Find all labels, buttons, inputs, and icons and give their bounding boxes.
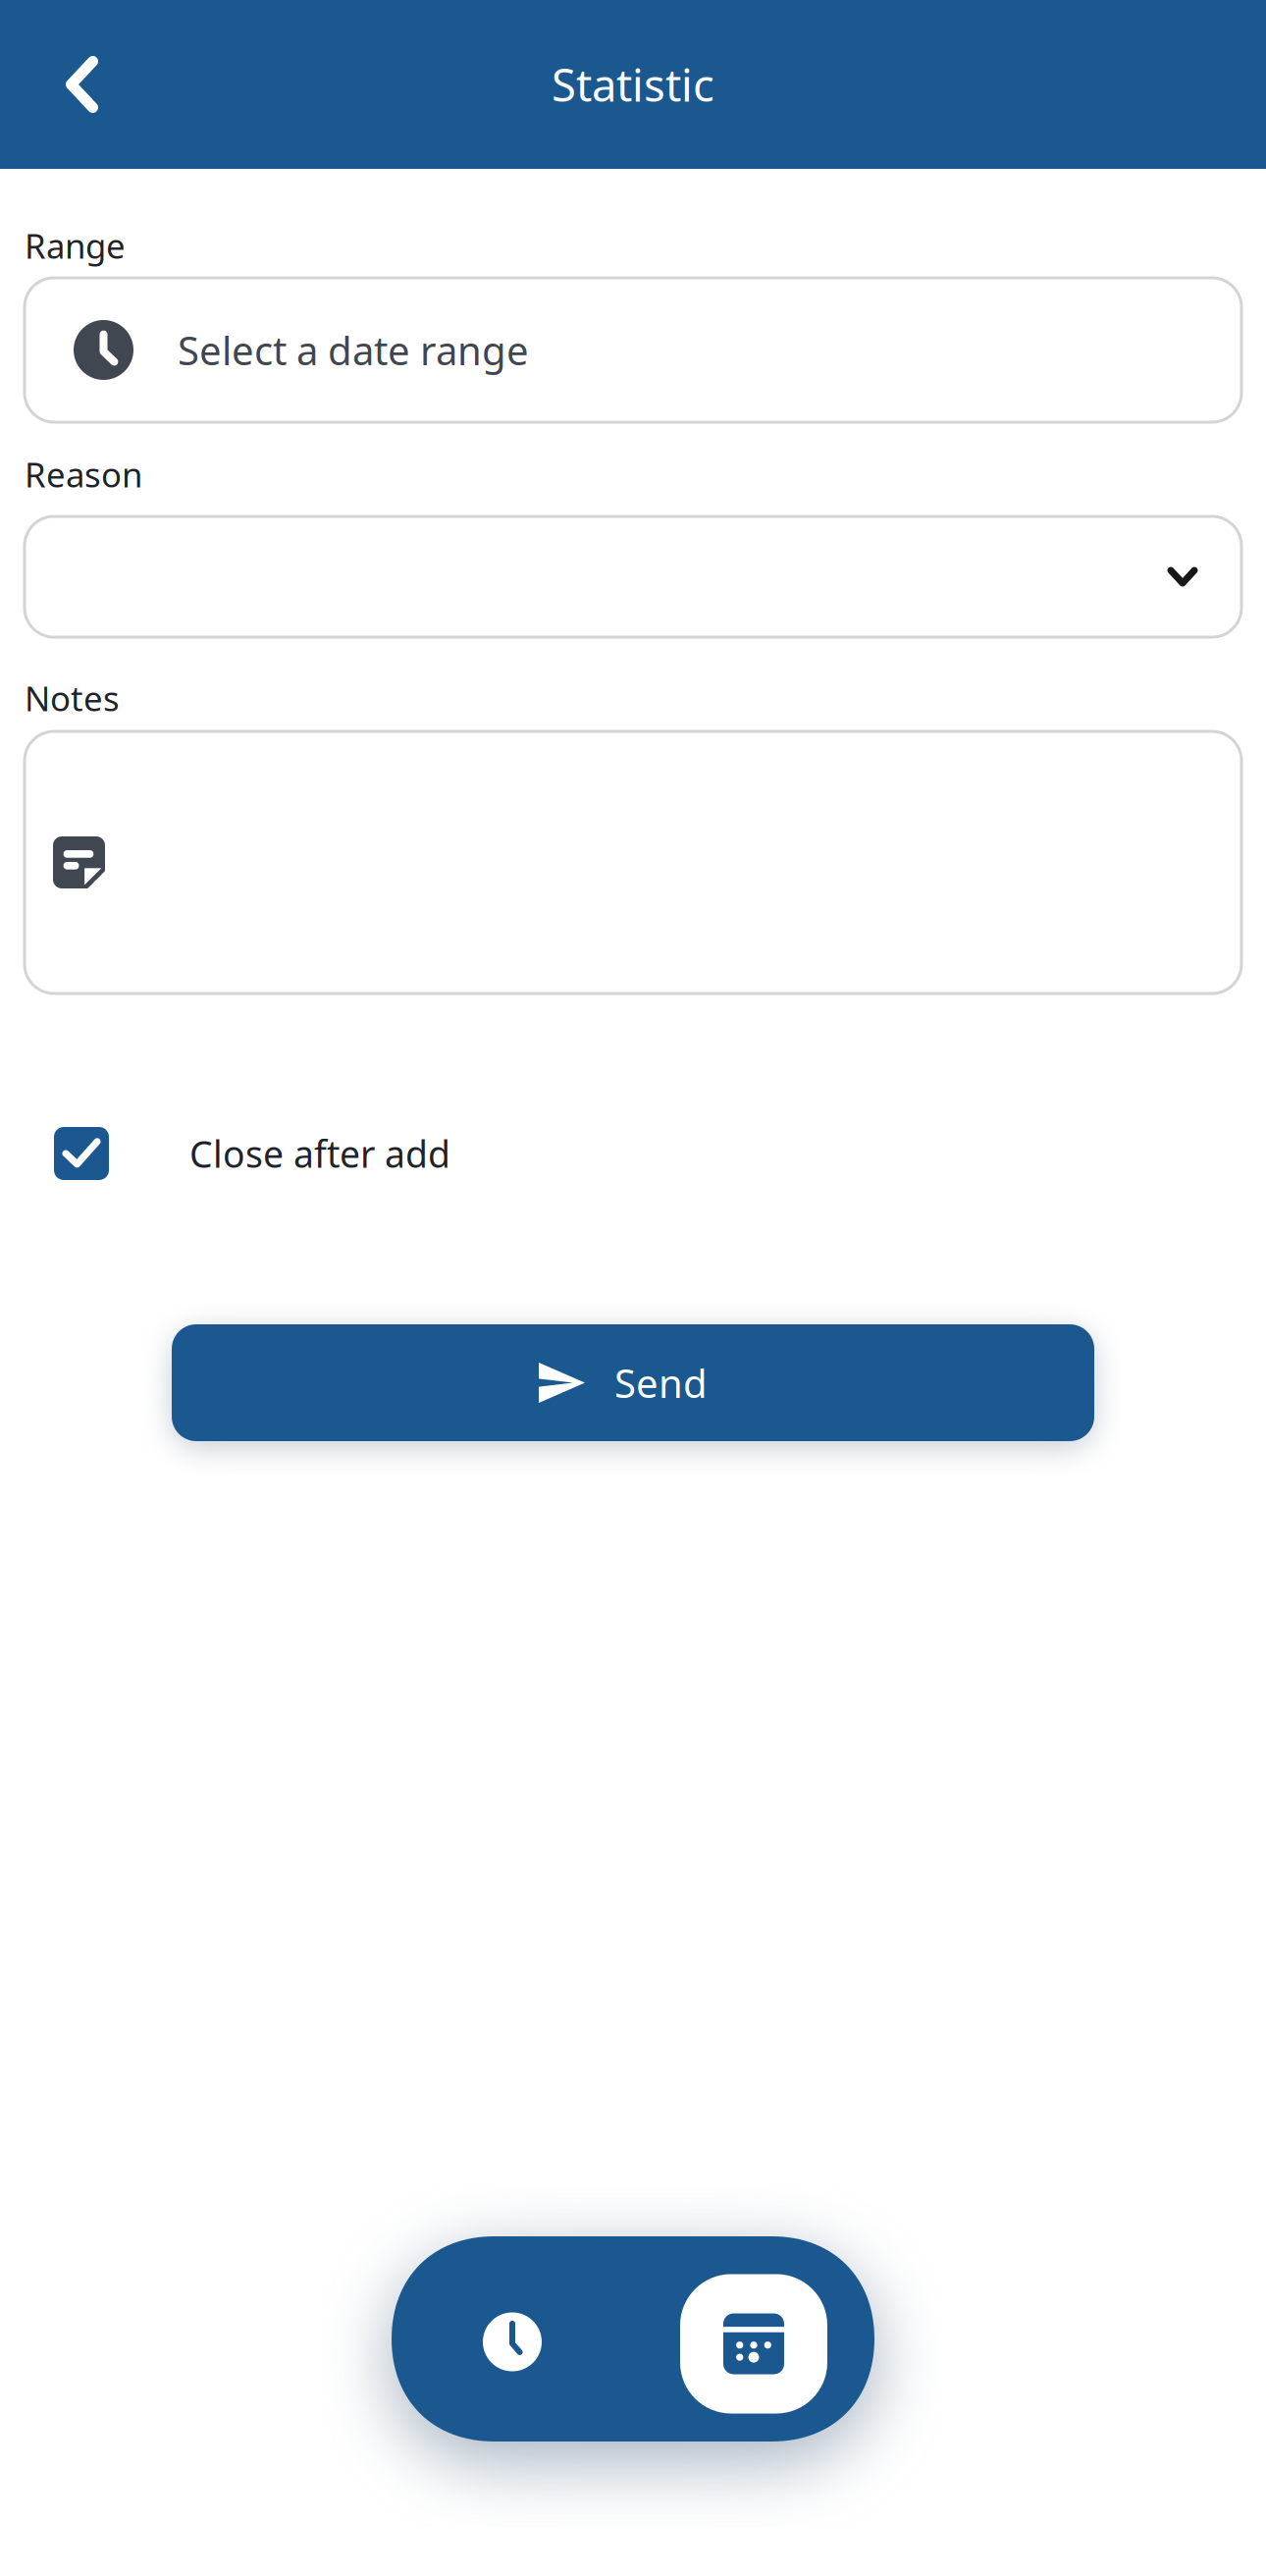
staticText: Send (614, 1357, 708, 1409)
staticText: Select a date range (178, 324, 529, 376)
button[interactable]: Calendar (633, 2236, 874, 2442)
staticText: Reason (25, 452, 142, 497)
button[interactable]: Time range (392, 2236, 633, 2442)
button[interactable]: Send (172, 1324, 1094, 1441)
staticText: Range (25, 223, 126, 268)
staticText: Notes (25, 675, 120, 721)
button[interactable]: Back (0, 26, 164, 143)
button[interactable] (25, 516, 1241, 637)
button[interactable]: Close after add (0, 1127, 1266, 1180)
staticText: Statistic (552, 55, 714, 114)
button[interactable]: Select a date range (25, 278, 1241, 422)
staticText: Close after add (189, 1129, 450, 1178)
